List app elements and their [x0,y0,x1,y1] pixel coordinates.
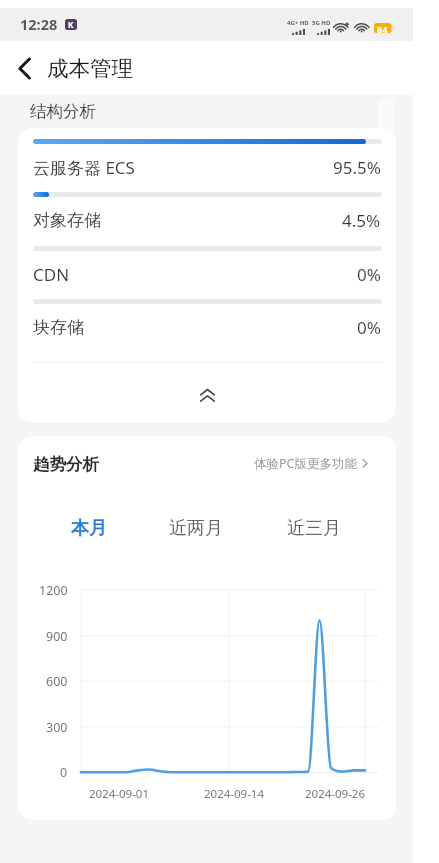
button[interactable]: Collapse [18,366,396,422]
button[interactable]: 对象存储 [18,192,396,245]
staticText: 趋势分析 [33,454,99,475]
staticText: 300 [46,719,68,736]
button[interactable]: Back [7,45,41,91]
staticText: CDN [33,263,70,286]
staticText: 600 [46,673,68,690]
staticText: 云服务器 ECS [33,156,135,179]
button[interactable]: CDN [18,246,396,299]
staticText: 0% [357,263,381,286]
button[interactable]: 块存储 [18,299,396,352]
staticText: 84 [377,23,388,33]
staticText: 5G HD [312,19,331,27]
staticText: 1200 [39,582,68,599]
staticText: 12:28 [20,14,58,34]
staticText: 4.5% [342,209,381,232]
button[interactable]: 近三月 [277,508,351,548]
staticText: 本月 [71,517,107,540]
staticText: 近三月 [287,517,341,540]
staticText: 0% [357,316,381,339]
staticText: 95.5% [333,156,381,179]
staticText: 成本管理 [47,55,133,82]
staticText: 近两月 [169,517,223,540]
staticText: 4G+ HD [287,19,309,27]
staticText: 体验PC版更多功能 [254,455,357,472]
button[interactable]: 体验PC版更多功能 [254,452,368,474]
staticText: 2024-09-01 [89,786,150,802]
staticText: 块存储 [33,317,84,338]
staticText: 结构分析 [30,101,96,122]
staticText: 对象存储 [33,210,101,231]
button[interactable]: 云服务器 ECS [18,139,396,192]
staticText: 2024-09-26 [305,786,366,802]
button[interactable]: 近两月 [159,508,233,548]
button[interactable]: 本月 [52,508,126,548]
staticText: 2024-09-14 [204,786,265,802]
staticText: 0 [60,764,68,781]
staticText: 900 [46,628,68,645]
staticText: K [68,19,74,30]
